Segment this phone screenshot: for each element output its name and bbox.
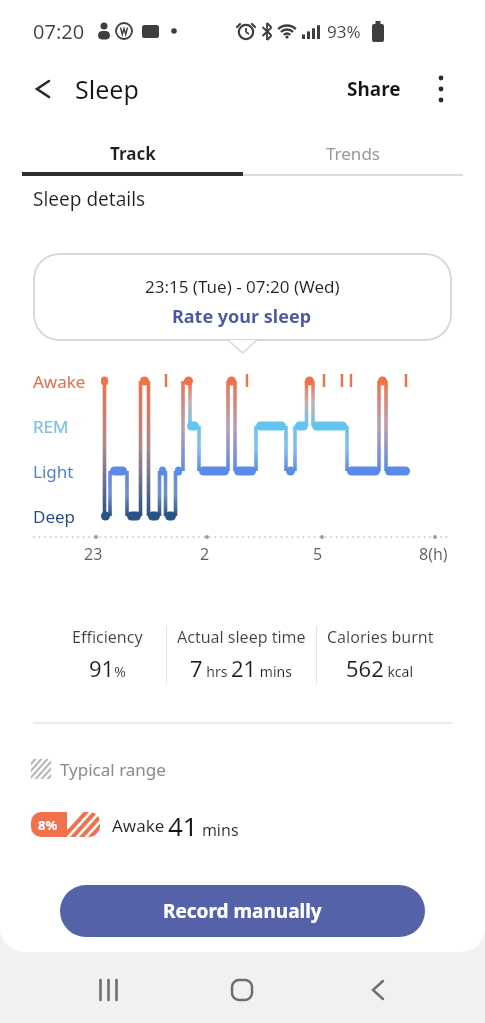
- staticText: 23: [84, 543, 103, 565]
- staticText: 91%: [89, 653, 126, 683]
- button[interactable]: Record manually: [60, 885, 425, 937]
- button[interactable]: [33, 253, 452, 341]
- button[interactable]: [80, 962, 136, 1018]
- staticText: Actual sleep time: [177, 626, 306, 648]
- staticText: Awake: [33, 370, 86, 393]
- staticText: Deep: [33, 505, 76, 528]
- staticText: Light: [33, 460, 74, 483]
- staticText: 23:15 (Tue) - 07:20 (Wed): [145, 275, 340, 298]
- button[interactable]: Track: [22, 131, 243, 176]
- staticText: 5: [313, 543, 323, 565]
- staticText: Typical range: [60, 758, 166, 781]
- staticText: Awake: [112, 814, 165, 837]
- staticText: 8(h): [419, 543, 448, 565]
- staticText: 8%: [38, 816, 58, 834]
- staticText: 41 mins: [168, 808, 239, 843]
- staticText: Sleep details: [33, 186, 146, 212]
- staticText: Rate your sleep: [172, 304, 312, 329]
- staticText: Sleep: [75, 72, 139, 106]
- button[interactable]: Trends: [243, 131, 463, 176]
- staticText: Share: [347, 76, 401, 102]
- button[interactable]: [350, 962, 406, 1018]
- staticText: 7 hrs 21 mins: [190, 653, 292, 683]
- staticText: Calories burnt: [327, 626, 434, 648]
- staticText: Record manually: [163, 898, 322, 924]
- button[interactable]: [214, 962, 270, 1018]
- staticText: Efficiency: [72, 626, 143, 648]
- staticText: Trends: [326, 142, 380, 165]
- button[interactable]: Share: [332, 67, 416, 111]
- staticText: 562 kcal: [346, 653, 414, 683]
- button[interactable]: [22, 69, 62, 109]
- staticText: Track: [110, 142, 156, 165]
- staticText: 2: [200, 543, 210, 565]
- staticText: 07:20: [33, 18, 85, 45]
- button[interactable]: [426, 69, 456, 109]
- staticText: 93%: [327, 20, 361, 43]
- staticText: REM: [33, 415, 69, 438]
